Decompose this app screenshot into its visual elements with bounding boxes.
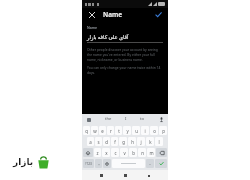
button[interactable]: i <box>141 126 149 135</box>
button[interactable]: d <box>103 137 110 146</box>
staticText: the <box>105 116 112 122</box>
staticText: بازار <box>13 157 34 167</box>
button[interactable]: a <box>87 137 94 146</box>
button[interactable]: y <box>123 126 131 135</box>
staticText: r <box>110 128 112 134</box>
button[interactable]: z <box>94 148 101 157</box>
button[interactable]: m <box>147 148 155 157</box>
button[interactable]: Enter <box>155 159 167 168</box>
staticText: a <box>89 139 92 145</box>
staticText: l <box>158 139 160 145</box>
button[interactable]: j <box>137 137 145 146</box>
button[interactable]: u <box>132 126 140 135</box>
button[interactable]: v <box>120 148 128 157</box>
button[interactable]: to <box>140 115 145 123</box>
button[interactable]: Back <box>144 171 153 180</box>
button[interactable]: Shift <box>83 148 93 157</box>
button[interactable]: ?123 <box>83 159 94 168</box>
button[interactable]: Space <box>112 159 145 168</box>
button[interactable]: k <box>146 137 154 146</box>
button[interactable]: l <box>155 137 163 146</box>
staticText: w <box>93 128 97 134</box>
staticText: I <box>125 116 127 122</box>
button[interactable]: Home <box>121 171 130 180</box>
staticText: x <box>105 150 108 156</box>
button[interactable]: n <box>138 148 146 157</box>
staticText: i <box>144 128 146 134</box>
button[interactable]: Close <box>86 9 97 20</box>
staticText: n <box>141 150 144 156</box>
staticText: z <box>96 150 99 156</box>
button[interactable]: s <box>95 137 102 146</box>
staticText: s <box>97 139 100 145</box>
staticText: Name <box>103 10 122 19</box>
staticText: ?123 <box>85 162 92 166</box>
button[interactable]: the <box>104 115 112 123</box>
staticText: h <box>131 139 134 145</box>
button[interactable]: Period <box>146 159 154 168</box>
staticText: y <box>126 128 129 134</box>
staticText: p <box>162 128 165 134</box>
staticText: You can only change your name twice with… <box>87 65 163 75</box>
button[interactable]: Bazaar <box>0 152 56 172</box>
staticText: c <box>114 150 117 156</box>
button[interactable]: g <box>119 137 127 146</box>
staticText: u <box>135 128 138 134</box>
staticText: o <box>153 128 156 134</box>
button[interactable]: Clipboard <box>85 116 92 123</box>
staticText: to <box>140 116 145 122</box>
staticText: آقای علی کافه بازار <box>87 33 129 40</box>
staticText: m <box>149 150 154 156</box>
staticText: f <box>114 139 116 145</box>
button[interactable]: آقای علی کافه بازار <box>87 33 163 40</box>
staticText: Name <box>87 25 98 30</box>
staticText: b <box>132 150 135 156</box>
button[interactable]: f <box>111 137 118 146</box>
staticText: Other people discover your account by se… <box>87 47 163 62</box>
button[interactable]: Emoji <box>103 159 111 168</box>
button[interactable]: o <box>150 126 158 135</box>
button[interactable]: Backspace <box>156 148 167 157</box>
button[interactable]: r <box>107 126 114 135</box>
button[interactable]: b <box>129 148 137 157</box>
button[interactable]: p <box>159 126 167 135</box>
button[interactable]: q <box>83 126 90 135</box>
staticText: q <box>85 128 88 134</box>
button[interactable]: I <box>124 115 128 123</box>
staticText: e <box>101 128 104 134</box>
button[interactable]: Comma <box>95 159 102 168</box>
staticText: g <box>122 139 125 145</box>
staticText: t <box>118 128 120 134</box>
staticText: k <box>149 139 152 145</box>
button[interactable]: Voice input <box>157 115 165 123</box>
button[interactable]: w <box>91 126 98 135</box>
button[interactable]: Save <box>153 9 164 20</box>
staticText: v <box>123 150 126 156</box>
button[interactable]: x <box>102 148 110 157</box>
staticText: j <box>140 139 142 145</box>
button[interactable]: c <box>111 148 119 157</box>
staticText: d <box>105 139 108 145</box>
button[interactable]: e <box>99 126 106 135</box>
button[interactable]: h <box>128 137 136 146</box>
button[interactable]: t <box>115 126 122 135</box>
button[interactable]: Recents <box>97 171 106 180</box>
